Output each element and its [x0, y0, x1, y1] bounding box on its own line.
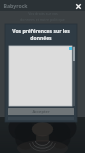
button[interactable]: Fermer	[75, 3, 82, 10]
staticText: Vos préférences sur les	[12, 28, 70, 35]
staticText: données	[30, 35, 52, 42]
staticText: Babyrock	[3, 2, 28, 9]
staticText: donnees et notre politique	[20, 17, 65, 22]
staticText: Accepter	[32, 109, 50, 115]
button[interactable]: Babyrock	[3, 2, 28, 9]
staticText: Vos droits sur vos	[28, 11, 58, 16]
button[interactable]: Accepter	[8, 108, 74, 115]
button[interactable]	[9, 46, 72, 106]
